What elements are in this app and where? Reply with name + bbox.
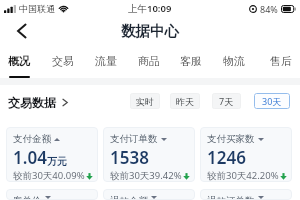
button[interactable]: 物流 [213,44,255,78]
button[interactable]: 实时 [130,93,160,109]
staticText: 售后 [270,54,292,68]
button[interactable]: 7天 [212,93,241,109]
staticText: 商品 [138,54,160,68]
staticText: 84% [260,3,278,15]
staticText: 交易数据 [8,95,56,110]
button[interactable]: Back [10,20,32,42]
staticText: 昨天 [176,96,194,107]
staticText: 实时 [136,96,154,107]
button[interactable]: 客单价 [6,189,98,200]
staticText: 30天 [262,95,282,107]
button[interactable]: 支付买家数 [200,127,292,182]
button[interactable]: 昨天 [170,93,200,109]
staticText: 1.04 [13,146,47,169]
button[interactable]: 支付金额 [6,127,98,182]
staticText: 退款金额 [110,195,148,200]
staticText: 客服 [180,54,202,68]
staticText: 物流 [223,54,245,68]
button[interactable]: 交易数据 [8,95,69,110]
button[interactable]: 交易 [42,44,84,78]
staticText: 万元 [47,155,67,168]
staticText: 较前30天40.09% [13,169,85,182]
staticText: 1246 [207,146,246,169]
button[interactable]: 退款订单数 [200,189,292,200]
button[interactable]: 30天 [254,93,290,109]
button[interactable]: 支付订单数 [103,127,195,182]
button[interactable]: 流量 [85,44,127,78]
staticText: 较前30天39.42% [110,169,182,182]
button[interactable]: 概况 [0,44,40,78]
staticText: 较前30天42.20% [207,169,279,182]
staticText: 客单价 [13,195,42,200]
button[interactable]: 商品 [128,44,170,78]
button[interactable]: 客服 [170,44,212,78]
staticText: 支付订单数 [110,133,158,145]
staticText: 流量 [95,54,117,68]
staticText: 数据中心 [121,22,179,40]
staticText: 支付金额 [13,133,51,145]
staticText: 概况 [8,54,30,68]
staticText: 上午10:09 [128,2,172,15]
staticText: 退款订单数 [207,195,255,200]
staticText: 1538 [110,146,149,169]
staticText: 中国联通 [19,3,55,14]
staticText: 7天 [219,95,234,107]
staticText: 交易 [52,54,74,68]
staticText: 支付买家数 [207,133,255,145]
button[interactable]: 售后 [260,44,300,78]
button[interactable]: 退款金额 [103,189,195,200]
